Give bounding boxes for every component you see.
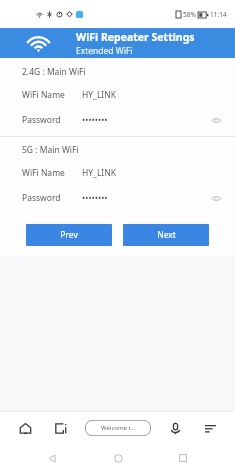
button[interactable]: Recent apps xyxy=(170,445,196,471)
staticText: 58% xyxy=(183,10,196,19)
button[interactable]: Show password xyxy=(209,191,223,205)
staticText: 2.4G : Main WiFi xyxy=(22,66,86,78)
button[interactable]: Password xyxy=(0,185,235,210)
staticText: •••••••• xyxy=(82,192,108,204)
staticText: Password xyxy=(22,192,61,204)
staticText: Extended WiFi xyxy=(76,45,133,57)
button[interactable]: Password xyxy=(0,107,235,132)
staticText: 5G : Main WiFi xyxy=(22,144,79,156)
staticText: 11:14 xyxy=(210,10,227,19)
button[interactable]: Back xyxy=(39,445,65,471)
button[interactable]: Home xyxy=(14,417,36,439)
staticText: Next xyxy=(157,229,176,241)
staticText: HY_LINK xyxy=(82,89,116,101)
button[interactable]: Next xyxy=(123,224,209,246)
button[interactable]: Menu xyxy=(199,417,221,439)
staticText: WiFi Repeater Settings xyxy=(76,30,195,44)
button[interactable]: Voice search xyxy=(164,417,186,439)
button[interactable]: Home xyxy=(105,445,131,471)
staticText: •••••••• xyxy=(82,114,108,126)
button[interactable]: Tabs xyxy=(49,417,71,439)
staticText: Prev xyxy=(60,229,78,241)
button[interactable]: Show password xyxy=(209,113,223,127)
button[interactable]: WiFi Name xyxy=(0,82,235,107)
staticText: WiFi Name xyxy=(22,89,65,101)
staticText: HY_LINK xyxy=(82,167,116,179)
staticText: Password xyxy=(22,114,61,126)
staticText: WiFi Name xyxy=(22,167,65,179)
button[interactable]: WiFi Name xyxy=(0,160,235,185)
button[interactable]: Welcome t... xyxy=(85,420,151,436)
button[interactable]: Prev xyxy=(26,224,112,246)
staticText: Welcome t... xyxy=(101,424,136,432)
